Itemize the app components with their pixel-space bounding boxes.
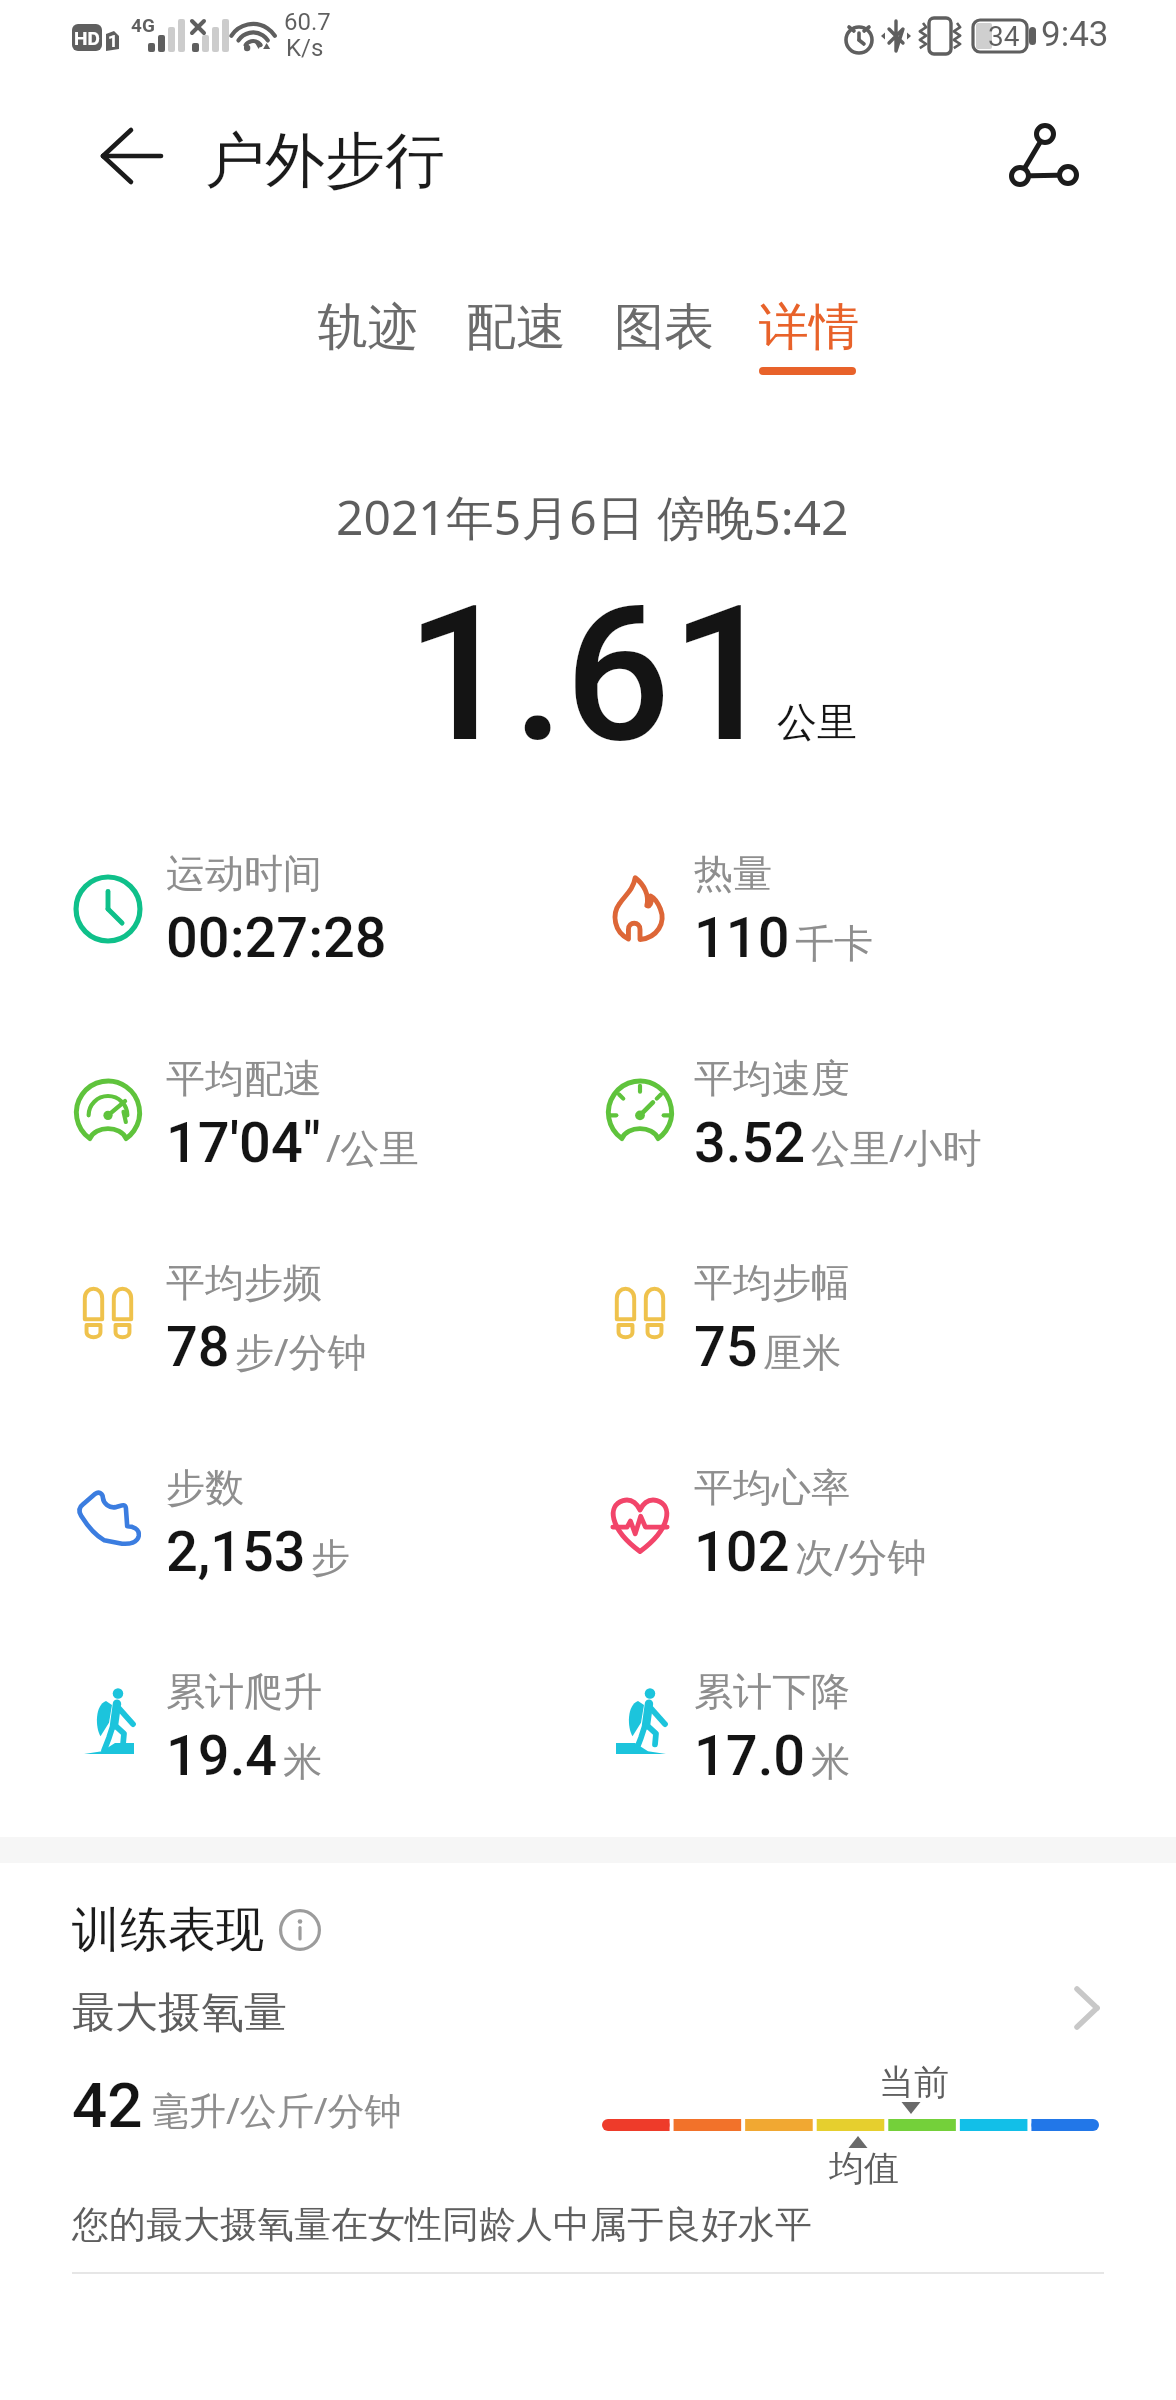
button[interactable]: 轨迹	[292, 284, 442, 394]
staticText: 轨迹	[318, 296, 418, 359]
staticText: 平均速度	[694, 1054, 850, 1103]
staticText: 3.52	[694, 1110, 806, 1176]
staticText: 公里	[777, 697, 857, 747]
staticText: 17.0	[694, 1723, 806, 1789]
staticText: 训练表现	[72, 1900, 264, 1960]
button[interactable]: 运动时间	[66, 847, 586, 977]
button[interactable]: 平均步频	[66, 1256, 586, 1386]
button[interactable]: 累计下降	[598, 1665, 1118, 1795]
staticText: 42	[72, 2069, 143, 2142]
staticText: 78	[166, 1314, 230, 1380]
staticText: 毫升/公斤/分钟	[152, 2084, 402, 2135]
staticText: 公里/小时	[811, 1120, 982, 1173]
button[interactable]: 热量	[598, 847, 1118, 977]
staticText: 110	[694, 905, 790, 971]
staticText: 19.4	[166, 1723, 278, 1789]
button[interactable]: 最大摄氧量	[60, 1972, 1116, 2202]
staticText: 热量	[694, 849, 772, 898]
staticText: HD	[74, 27, 100, 49]
button[interactable]: Share	[998, 110, 1090, 202]
staticText: 图表	[614, 296, 714, 359]
staticText: 34	[988, 20, 1020, 53]
staticText: K/s	[286, 34, 324, 62]
button[interactable]: 步数	[66, 1461, 586, 1591]
staticText: 累计爬升	[166, 1667, 322, 1716]
staticText: 当前	[879, 2060, 949, 2104]
staticText: 户外步行	[205, 123, 445, 199]
staticText: 您的最大摄氧量在女性同龄人中属于良好水平	[72, 2201, 812, 2248]
staticText: 17'04"	[166, 1110, 321, 1176]
button[interactable]: 平均速度	[598, 1052, 1118, 1182]
staticText: 00:27:28	[166, 905, 387, 971]
button[interactable]: 平均配速	[66, 1052, 586, 1182]
button[interactable]: About training performance	[274, 1904, 326, 1956]
staticText: 步	[311, 1533, 350, 1582]
staticText: 4G	[131, 14, 155, 36]
staticText: 步数	[166, 1463, 244, 1512]
button[interactable]: 累计爬升	[66, 1665, 586, 1795]
staticText: 均值	[829, 2146, 899, 2190]
staticText: 步/分钟	[235, 1324, 367, 1377]
staticText: 最大摄氧量	[72, 1986, 287, 2040]
staticText: 60.7	[284, 8, 331, 36]
button[interactable]: 图表	[588, 284, 738, 394]
staticText: 平均配速	[166, 1054, 322, 1103]
staticText: 平均心率	[694, 1463, 850, 1512]
staticText: 1.61	[406, 566, 778, 785]
button[interactable]: 平均心率	[598, 1461, 1118, 1591]
staticText: 运动时间	[166, 849, 322, 898]
staticText: /公里	[326, 1120, 419, 1173]
staticText: 2021年5月6日 傍晚5:42	[336, 484, 849, 550]
staticText: 厘米	[763, 1328, 841, 1377]
staticText: 平均步幅	[694, 1258, 850, 1307]
button[interactable]: 详情	[733, 284, 883, 394]
staticText: 2,153	[166, 1519, 306, 1585]
button[interactable]: 平均步幅	[598, 1256, 1118, 1386]
button[interactable]: 配速	[440, 284, 590, 394]
staticText: 累计下降	[694, 1667, 850, 1716]
staticText: 102	[694, 1519, 790, 1585]
staticText: 千卡	[795, 919, 873, 968]
staticText: 平均步频	[166, 1258, 322, 1307]
staticText: 配速	[466, 296, 566, 359]
staticText: 次/分钟	[795, 1529, 927, 1582]
staticText: 1	[108, 31, 118, 51]
staticText: 9:43	[1041, 14, 1109, 55]
staticText: 75	[694, 1314, 758, 1380]
button[interactable]: Back	[70, 110, 162, 202]
staticText: 详情	[759, 296, 859, 359]
staticText: 米	[811, 1737, 850, 1786]
staticText: 米	[283, 1737, 322, 1786]
